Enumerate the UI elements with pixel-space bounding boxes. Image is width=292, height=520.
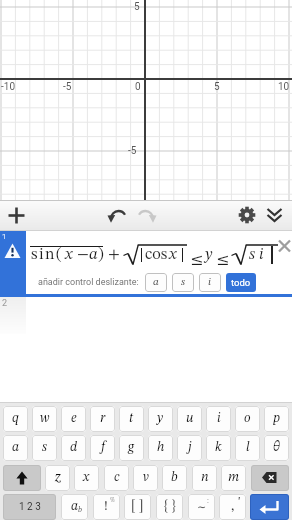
staticText: c (114, 471, 120, 485)
button[interactable]: i (199, 273, 221, 292)
staticText: + (108, 246, 120, 263)
button[interactable] (251, 465, 289, 491)
staticText: a (153, 277, 159, 288)
button[interactable]: e (61, 406, 86, 432)
staticText: : (207, 498, 209, 505)
button[interactable]: l (235, 435, 260, 461)
button[interactable]: p (264, 406, 289, 432)
button[interactable]: b (162, 465, 187, 491)
staticText: ≤ (190, 250, 204, 269)
button[interactable]: , (219, 494, 246, 520)
button[interactable]: n (192, 465, 217, 491)
staticText: d (70, 441, 78, 455)
staticText: t (129, 412, 134, 426)
staticText: sin (31, 246, 56, 263)
staticText: f (101, 441, 105, 455)
button[interactable] (105, 203, 130, 228)
staticText: 5 (214, 81, 220, 93)
button[interactable]: d (61, 435, 86, 461)
button[interactable]: ∼ (188, 494, 215, 520)
staticText: 10 (278, 81, 290, 93)
button[interactable]: a (61, 494, 88, 520)
button[interactable]: h (148, 435, 173, 461)
staticText: ! (104, 500, 108, 514)
staticText: y (205, 246, 213, 263)
button[interactable]: w (32, 406, 57, 432)
button[interactable]: y (148, 406, 173, 432)
button[interactable] (277, 238, 292, 253)
button[interactable]: s (172, 273, 194, 292)
staticText: { } (164, 500, 176, 514)
staticText: 1 (2, 232, 7, 241)
button[interactable]: a (145, 273, 167, 292)
staticText: ≤ (216, 250, 230, 269)
button[interactable]: [ ] (124, 494, 151, 520)
button[interactable]: 1 2 3 (3, 494, 56, 520)
staticText: ∼ (197, 501, 207, 514)
staticText: añadir control deslizante: (38, 277, 139, 288)
staticText: % (110, 497, 115, 504)
button[interactable] (134, 203, 159, 228)
button[interactable] (0, 231, 26, 294)
staticText: 5 (134, 1, 140, 13)
staticText: ) (98, 246, 104, 263)
staticText: i (259, 246, 264, 263)
button[interactable]: θ (264, 435, 289, 461)
staticText: z (55, 471, 61, 485)
button[interactable]: o (235, 406, 260, 432)
button[interactable] (250, 494, 289, 520)
staticText: 1 2 3 (19, 501, 41, 513)
button[interactable]: k (206, 435, 231, 461)
staticText: [ ] (131, 500, 144, 514)
button[interactable]: todo (226, 273, 256, 292)
staticText: a (89, 246, 98, 263)
button[interactable]: i (206, 406, 231, 432)
button[interactable]: f (90, 435, 115, 461)
button[interactable] (236, 204, 258, 226)
button[interactable]: t (119, 406, 144, 432)
staticText: todo (231, 277, 251, 288)
staticText: x (65, 246, 73, 263)
staticText: i (208, 277, 212, 288)
button[interactable]: v (133, 465, 158, 491)
staticText: h (157, 441, 165, 455)
staticText: , (231, 500, 235, 514)
staticText: i (217, 412, 221, 426)
button[interactable]: m (221, 465, 246, 491)
button[interactable]: a (3, 435, 28, 461)
staticText: w (40, 412, 50, 426)
staticText: q (12, 412, 19, 426)
staticText: ( (56, 246, 62, 263)
button[interactable]: r (90, 406, 115, 432)
staticText: -5 (128, 145, 137, 157)
button[interactable]: c (104, 465, 129, 491)
button[interactable] (26, 231, 292, 294)
button[interactable]: x (74, 465, 99, 491)
staticText: p (273, 412, 281, 426)
button[interactable]: j (177, 435, 202, 461)
staticText: n (201, 471, 209, 485)
button[interactable]: z (45, 465, 70, 491)
staticText: l (246, 441, 250, 455)
button[interactable] (3, 465, 41, 491)
staticText: b (78, 506, 82, 514)
staticText: o (244, 412, 251, 426)
staticText: − (77, 246, 89, 263)
staticText: r (100, 412, 106, 426)
staticText: x (169, 246, 177, 263)
staticText: a (12, 441, 20, 455)
button[interactable] (263, 203, 288, 228)
button[interactable]: ! (93, 494, 120, 520)
staticText: ' (238, 497, 241, 511)
button[interactable]: g (119, 435, 144, 461)
button[interactable] (4, 203, 29, 228)
staticText: 2 (2, 298, 8, 309)
staticText: x (83, 471, 90, 485)
button[interactable]: { } (156, 494, 183, 520)
staticText: s (181, 277, 186, 288)
button[interactable]: s (32, 435, 57, 461)
button[interactable]: u (177, 406, 202, 432)
staticText: -10 (1, 81, 16, 93)
button[interactable]: q (3, 406, 28, 432)
staticText: y (157, 412, 164, 426)
